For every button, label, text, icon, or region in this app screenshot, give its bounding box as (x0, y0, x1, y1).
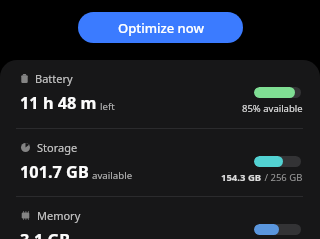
button[interactable]: Battery (0, 60, 320, 128)
staticText: / 256 GB (262, 171, 303, 184)
staticText: Battery (35, 71, 73, 86)
staticText: 11 h 48 m (20, 92, 97, 114)
staticText: 3.1 GB (20, 229, 71, 239)
staticText: 154.3 GB (221, 171, 262, 184)
staticText: available (92, 169, 133, 182)
staticText: left (100, 100, 115, 113)
staticText: Memory (37, 208, 81, 223)
button[interactable]: Memory (0, 197, 320, 239)
button[interactable]: Optimize now (78, 12, 243, 43)
staticText: 85% available (242, 102, 303, 115)
staticText: 101.7 GB (20, 161, 89, 183)
button[interactable]: Storage (0, 129, 320, 197)
staticText: Optimize now (118, 19, 204, 37)
staticText: Storage (37, 140, 78, 155)
